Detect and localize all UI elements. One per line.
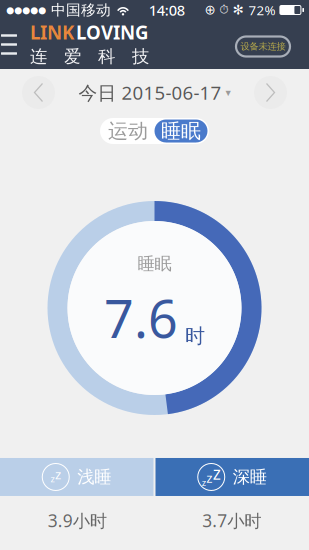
- staticText: 设备未连接: [240, 41, 285, 52]
- button[interactable]: 睡眠: [154, 119, 207, 142]
- staticText: z: [213, 461, 221, 484]
- staticText: 72%: [248, 1, 275, 19]
- staticText: 科: [98, 46, 115, 67]
- staticText: 运动: [108, 119, 148, 143]
- button[interactable]: 设备未连接: [236, 36, 290, 56]
- staticText: 深睡: [233, 466, 267, 488]
- button[interactable]: 运动: [101, 119, 154, 142]
- staticText: 浅睡: [77, 466, 111, 488]
- staticText: 连: [30, 46, 47, 67]
- staticText: z: [202, 476, 206, 488]
- staticText: 时: [185, 324, 205, 348]
- staticText: ▾: [225, 86, 230, 98]
- staticText: 中国移动: [51, 1, 111, 19]
- staticText: LOVING: [76, 20, 149, 45]
- staticText: ●●●●●: [6, 5, 46, 15]
- staticText: 睡眠: [137, 253, 171, 274]
- staticText: 技: [132, 46, 149, 67]
- button[interactable]: Next day: [254, 76, 287, 109]
- staticText: 7.6: [104, 283, 178, 352]
- staticText: 3.7小时: [202, 509, 261, 532]
- staticText: z: [55, 465, 61, 483]
- button[interactable]: Previous day: [22, 76, 55, 109]
- staticText: LINK: [30, 20, 74, 45]
- button[interactable]: z: [155, 458, 309, 496]
- staticText: ⏱: [219, 4, 228, 16]
- staticText: 睡眠: [161, 119, 201, 143]
- staticText: 爱: [64, 46, 81, 67]
- staticText: ⊕: [204, 2, 215, 17]
- button[interactable]: z: [0, 458, 153, 496]
- staticText: z: [206, 469, 212, 486]
- staticText: 今日 2015-06-17: [78, 80, 221, 105]
- button[interactable]: 今日 2015-06-17: [78, 80, 230, 105]
- staticText: ✻: [232, 2, 243, 17]
- staticText: 14:08: [149, 0, 185, 20]
- button[interactable]: Menu: [0, 20, 29, 69]
- staticText: z: [50, 472, 54, 485]
- staticText: 3.9小时: [48, 509, 107, 532]
